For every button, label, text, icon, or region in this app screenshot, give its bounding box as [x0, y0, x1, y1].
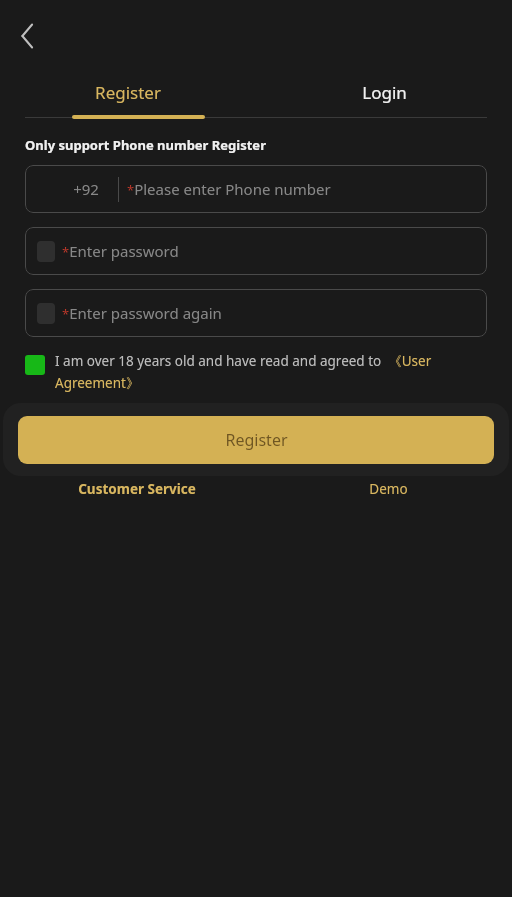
button[interactable]: Back	[6, 14, 50, 58]
button[interactable]: *Enter password	[25, 227, 487, 275]
staticText: +92	[73, 179, 99, 199]
staticText: *Please enter Phone number	[127, 179, 331, 199]
button[interactable]: Login	[256, 69, 512, 115]
staticText: *Enter password again	[62, 303, 222, 323]
staticText: *Enter password	[62, 241, 179, 261]
staticText: Only support Phone number Register	[25, 136, 266, 154]
button[interactable]: Demo	[256, 480, 512, 498]
staticText: Customer Service	[78, 480, 196, 498]
staticText: Login	[362, 81, 407, 104]
button[interactable]: Register	[18, 416, 494, 464]
staticText: Demo	[369, 480, 408, 498]
staticText: Register	[95, 81, 161, 104]
button[interactable]: Register	[0, 69, 256, 115]
staticText: Register	[225, 429, 288, 451]
button[interactable]: I am over 18 years old and have read and…	[25, 352, 487, 392]
staticText: I am over 18 years old and have read and…	[55, 352, 487, 392]
button[interactable]: *Enter password again	[25, 289, 487, 337]
button[interactable]: Customer Service	[0, 480, 256, 498]
button[interactable]: +92	[25, 165, 487, 213]
